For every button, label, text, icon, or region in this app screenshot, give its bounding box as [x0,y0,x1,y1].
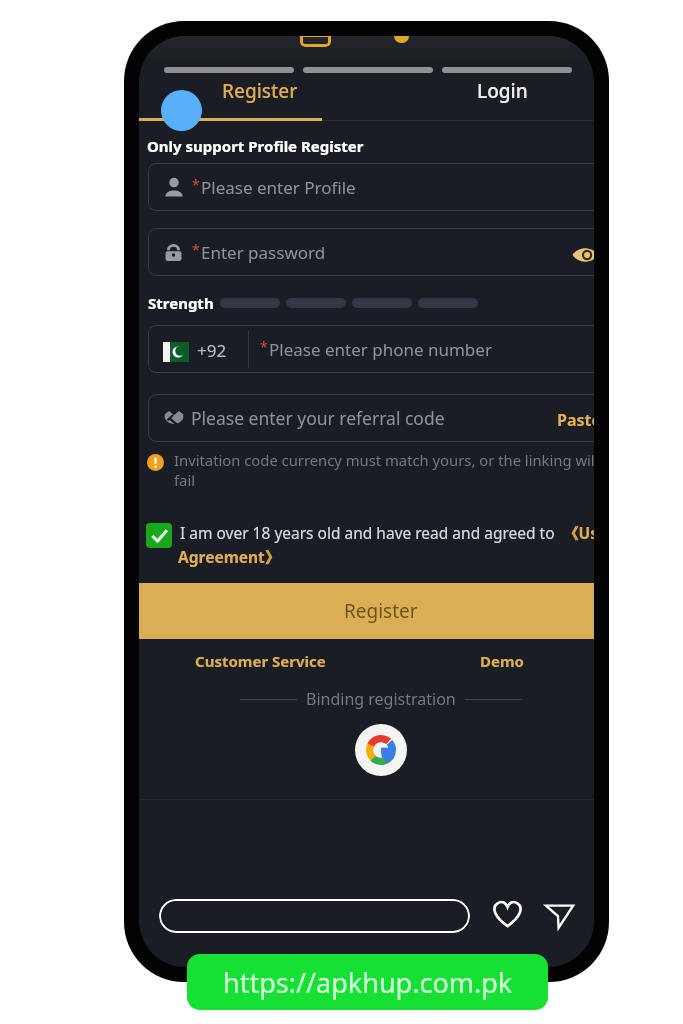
staticText: Please enter phone number [269,338,492,361]
staticText: * [192,175,200,194]
staticText: 《User [563,522,594,543]
button[interactable]: Like [488,894,526,932]
staticText: Register [344,598,418,624]
staticText: Invitation code currency must match your… [174,450,594,491]
button[interactable]: Demo [381,646,594,676]
button[interactable]: Show password [569,239,594,271]
staticText: Login [477,78,528,104]
staticText: +92 [197,339,227,362]
staticText: Please enter Profile [201,176,356,199]
button[interactable]: Share [541,897,577,933]
button[interactable]: Sign in with Google [355,724,407,776]
staticText: Enter password [201,241,326,264]
staticText: Only support Profile Register [147,136,364,156]
button[interactable]: Register [139,583,594,639]
button[interactable]: Paste [553,405,594,435]
button[interactable]: Register [139,70,381,112]
staticText: Paste [557,409,594,431]
button[interactable]: Send message [159,899,470,933]
staticText: Please enter your referral code [191,406,445,430]
button[interactable]: Please enter your referral code [148,394,594,442]
staticText: Strength [148,293,214,313]
button[interactable]: Agree to terms [146,523,172,548]
button[interactable]: * [148,228,594,276]
button[interactable]: Customer Service [139,646,381,676]
staticText: Register [222,78,298,104]
staticText: Customer Service [195,651,326,671]
staticText: * [192,240,200,259]
button[interactable]: * [148,163,594,211]
staticText: * [260,337,268,356]
button[interactable]: +92 [148,325,594,373]
staticText: Agreement》 [178,546,281,567]
staticText: Demo [480,651,524,671]
staticText: I am over 18 years old and have read and… [180,522,555,543]
staticText: https://apkhup.com.pk [223,964,513,1001]
staticText: Binding registration [306,688,456,710]
button[interactable]: Login [381,70,594,112]
